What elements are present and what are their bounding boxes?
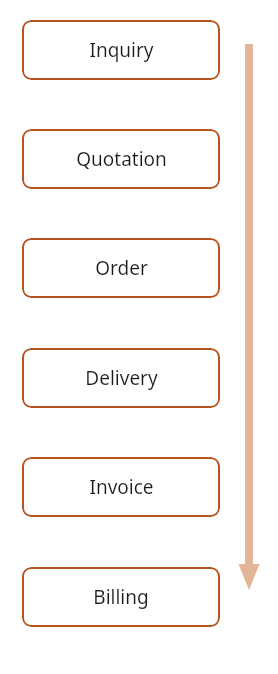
staticText: Quotation <box>76 146 167 172</box>
staticText: Invoice <box>89 474 154 500</box>
staticText: Inquiry <box>89 37 154 63</box>
staticText: Billing <box>93 584 149 610</box>
button[interactable]: Order <box>22 238 220 298</box>
button[interactable]: Inquiry <box>22 20 220 80</box>
button[interactable]: Delivery <box>22 348 220 408</box>
staticText: Delivery <box>85 365 158 391</box>
staticText: Order <box>95 255 148 281</box>
button[interactable]: Invoice <box>22 457 220 517</box>
button[interactable]: Billing <box>22 567 220 627</box>
other: Process flow direction <box>236 44 262 590</box>
button[interactable]: Quotation <box>22 129 220 189</box>
